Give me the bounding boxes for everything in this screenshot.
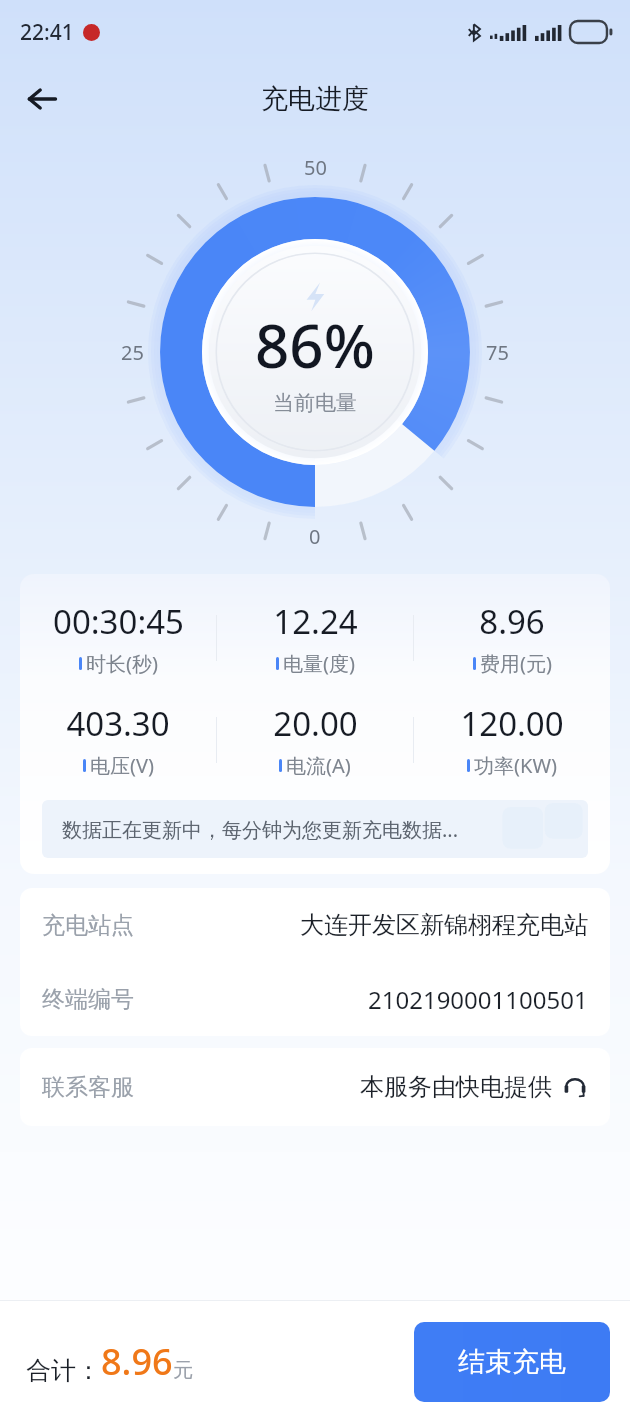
staticText: 8.96 (101, 1337, 173, 1386)
staticText: 22:41 (20, 18, 74, 47)
staticText: 电量(度) (283, 650, 355, 677)
button[interactable]: 终端编号 (42, 962, 588, 1036)
staticText: 终端编号 (42, 985, 134, 1014)
staticText: 费用(元) (480, 650, 552, 677)
staticText: 元 (173, 1358, 193, 1383)
staticText: 86% (255, 304, 375, 386)
button[interactable]: 结束充电 (414, 1322, 610, 1402)
staticText: 8.96 (479, 599, 545, 644)
staticText: 403.30 (66, 701, 170, 746)
staticText: 数据正在更新中，每分钟为您更新充电数据... (62, 816, 459, 843)
staticText: 合计： (26, 1355, 101, 1386)
staticText: 结束充电 (458, 1345, 566, 1379)
button[interactable]: 联系客服 (20, 1048, 610, 1126)
staticText: 时长(秒) (86, 650, 158, 677)
staticText: 12.24 (273, 599, 358, 644)
staticText: 2102190001100501 (368, 983, 588, 1016)
staticText: 充电进度 (261, 82, 369, 116)
staticText: 本服务由快电提供 (360, 1072, 552, 1102)
button[interactable]: 充电站点 (42, 888, 588, 962)
staticText: 75 (486, 339, 509, 366)
staticText: 50 (304, 154, 327, 181)
staticText: 0 (309, 523, 321, 550)
staticText: 大连开发区新锦栩程充电站 (300, 910, 588, 940)
staticText: 联系客服 (42, 1073, 134, 1102)
staticText: 充电站点 (42, 911, 134, 940)
staticText: 功率(KW) (474, 752, 557, 779)
staticText: 20.00 (273, 701, 358, 746)
staticText: 120.00 (460, 701, 564, 746)
button[interactable]: Back (14, 71, 70, 127)
staticText: 当前电量 (273, 390, 357, 416)
staticText: 00:30:45 (53, 599, 184, 644)
staticText: 电压(V) (90, 752, 154, 779)
other: Customer service (562, 1074, 588, 1100)
staticText: 25 (121, 339, 144, 366)
staticText: 电流(A) (286, 752, 351, 779)
